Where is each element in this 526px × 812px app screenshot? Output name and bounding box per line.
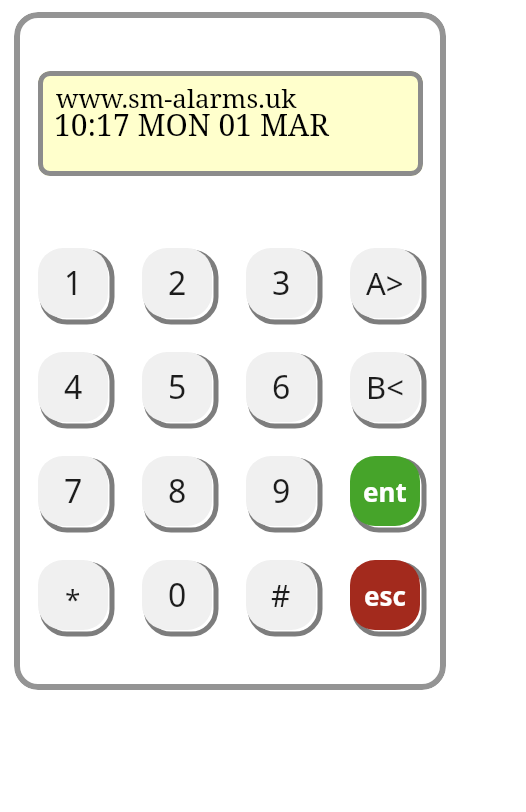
staticText: * bbox=[65, 580, 81, 618]
staticText: # bbox=[271, 575, 291, 616]
button[interactable]: 4 bbox=[38, 352, 108, 422]
button[interactable]: # bbox=[246, 560, 316, 630]
button[interactable]: 1 bbox=[38, 248, 108, 318]
staticText: 3 bbox=[272, 261, 291, 305]
button[interactable]: www.sm-alarms.uk bbox=[38, 71, 423, 176]
staticText: 5 bbox=[168, 365, 187, 409]
staticText: B< bbox=[366, 366, 404, 408]
button[interactable]: ent bbox=[350, 456, 420, 526]
staticText: 10:17 MON 01 MAR bbox=[54, 104, 329, 145]
button[interactable]: * bbox=[38, 560, 108, 630]
button[interactable]: 7 bbox=[38, 456, 108, 526]
staticText: 7 bbox=[64, 469, 83, 513]
button[interactable]: A> bbox=[350, 248, 420, 318]
staticText: A> bbox=[366, 262, 404, 304]
button[interactable]: 2 bbox=[142, 248, 212, 318]
button[interactable]: B< bbox=[350, 352, 420, 422]
staticText: 1 bbox=[64, 261, 83, 305]
button[interactable]: esc bbox=[350, 560, 420, 630]
staticText: esc bbox=[364, 578, 406, 613]
button[interactable]: 0 bbox=[142, 560, 212, 630]
staticText: 8 bbox=[168, 469, 187, 513]
staticText: 4 bbox=[64, 365, 83, 409]
staticText: www.sm-alarms.uk bbox=[56, 80, 297, 115]
button[interactable]: 8 bbox=[142, 456, 212, 526]
staticText: 6 bbox=[272, 365, 291, 409]
staticText: ent bbox=[363, 474, 407, 509]
button[interactable]: 3 bbox=[246, 248, 316, 318]
button[interactable]: 9 bbox=[246, 456, 316, 526]
button[interactable]: 6 bbox=[246, 352, 316, 422]
button[interactable]: 5 bbox=[142, 352, 212, 422]
staticText: 0 bbox=[168, 573, 187, 617]
staticText: 9 bbox=[272, 469, 291, 513]
staticText: 2 bbox=[168, 261, 187, 305]
